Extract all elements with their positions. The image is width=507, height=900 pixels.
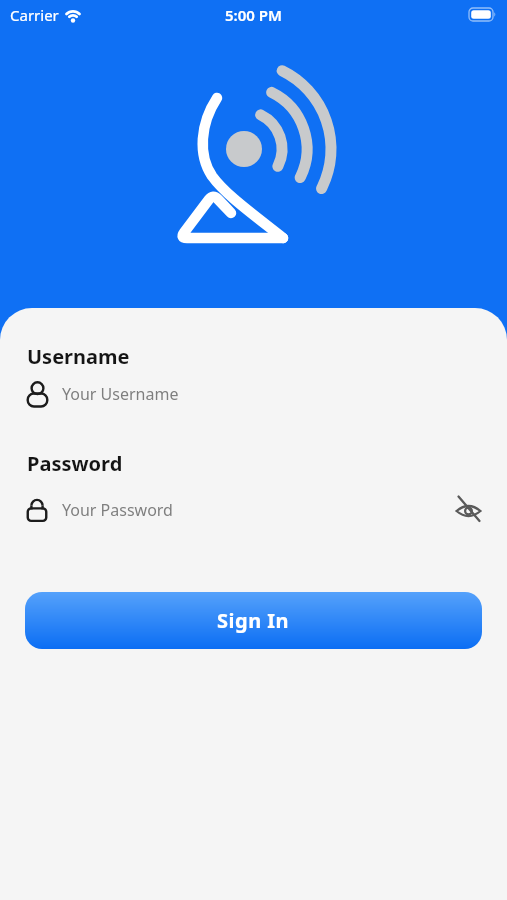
staticText: Carrier [10,5,59,25]
staticText: Your Username [62,383,179,405]
staticText: Sign In [217,607,290,634]
staticText: Your Password [62,499,173,521]
staticText: 5:00 PM [225,5,282,25]
staticText: Password [27,450,123,477]
button[interactable] [455,496,482,523]
button[interactable]: Sign In [25,592,482,649]
button[interactable]: Your Username [27,381,482,407]
button[interactable]: Your Password [27,496,482,523]
staticText: Username [27,343,130,370]
